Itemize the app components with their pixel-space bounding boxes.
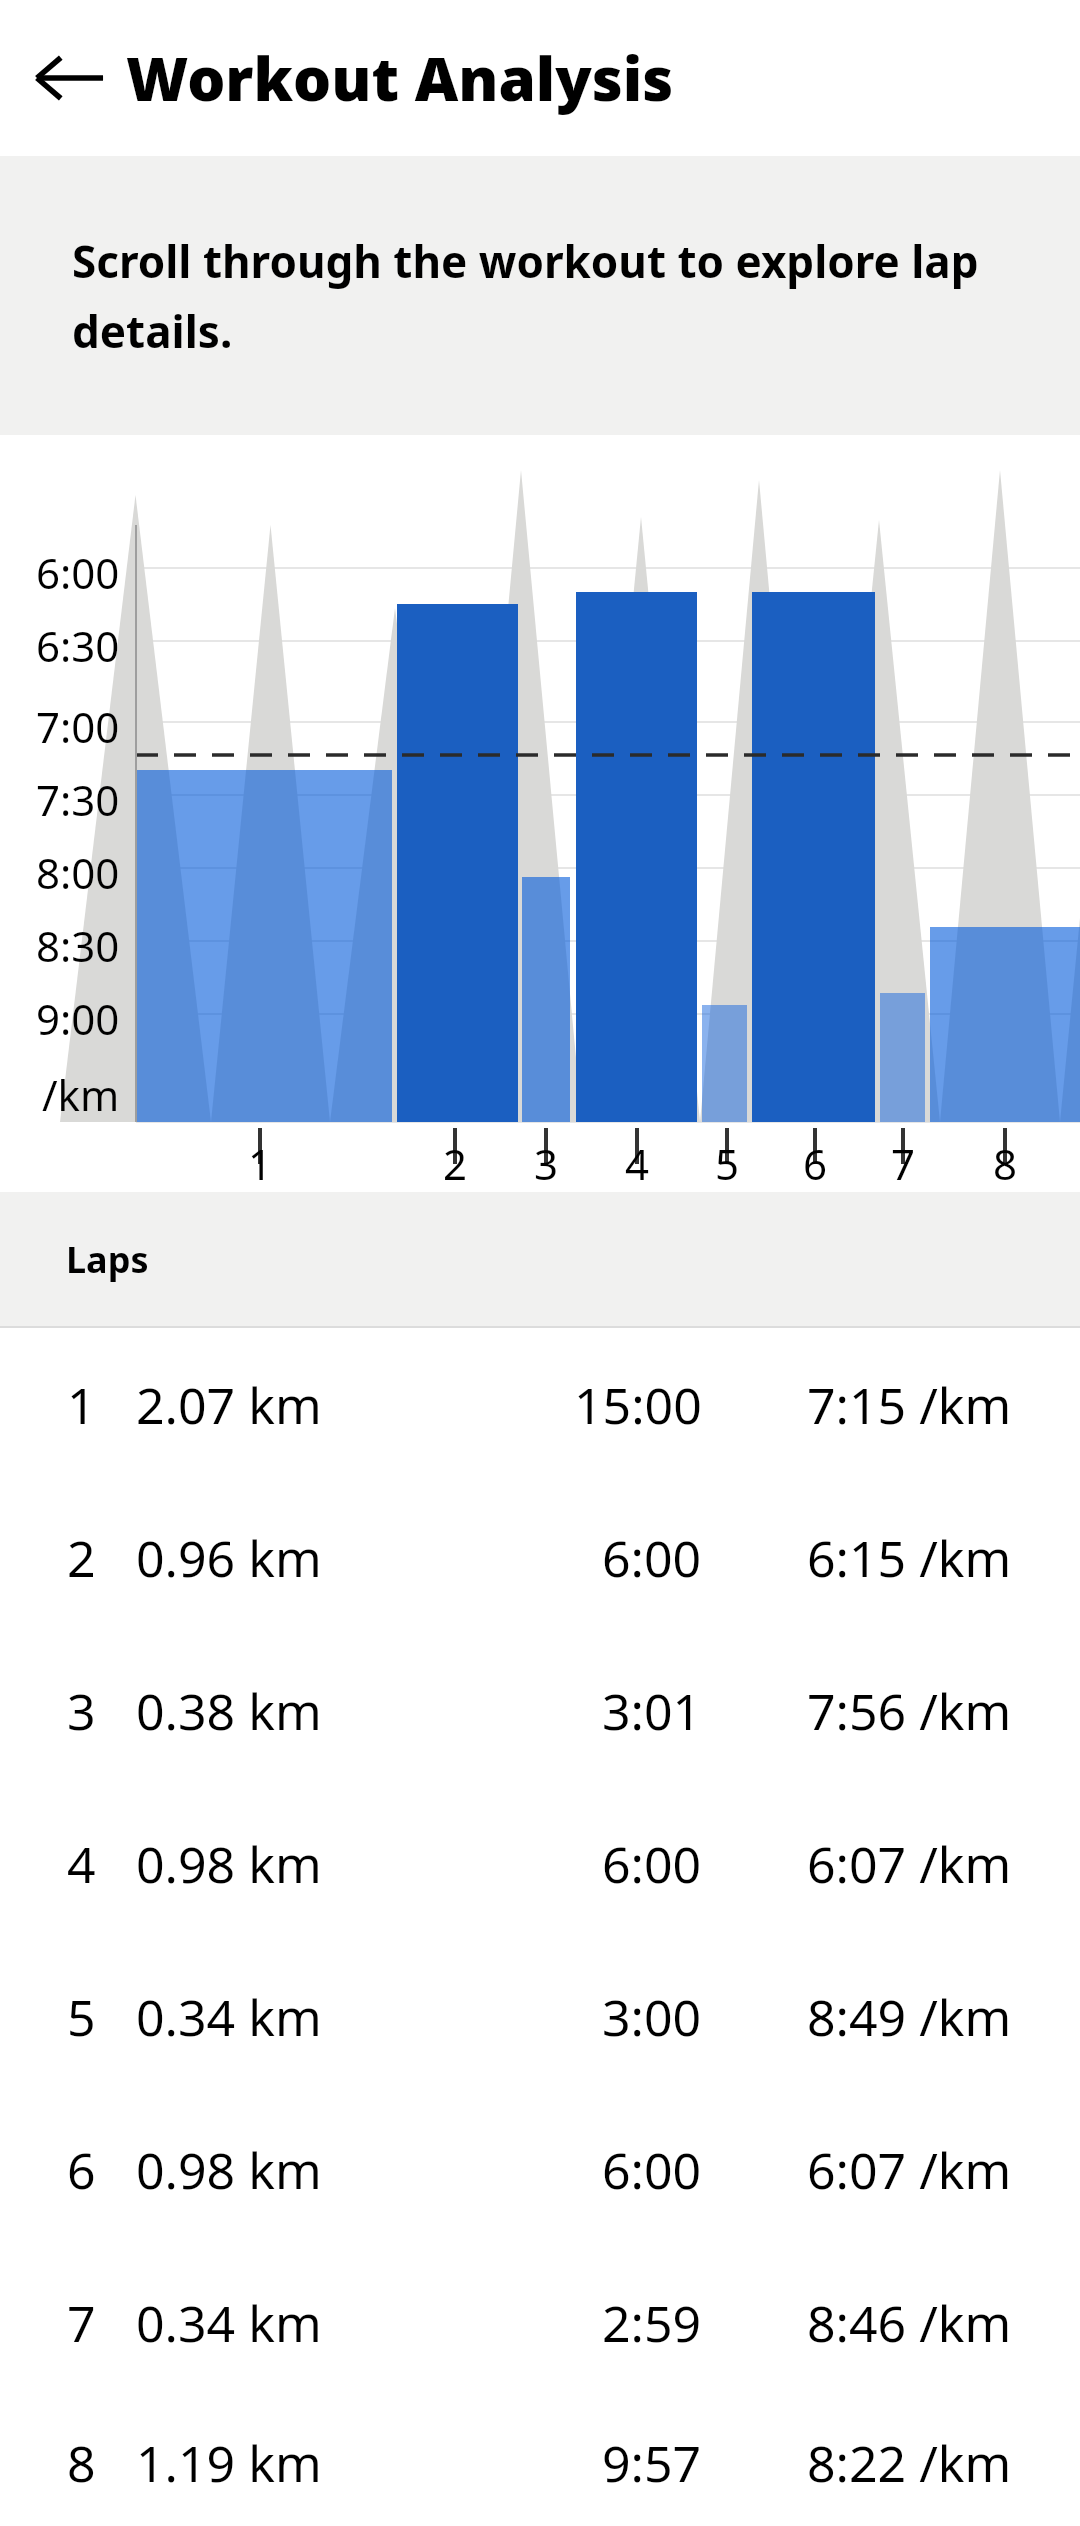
staticText: 6:00 (602, 2136, 702, 2204)
staticText: 0.34 km (136, 2289, 322, 2357)
staticText: 0.96 km (136, 1524, 322, 1592)
staticText: /km (42, 1066, 120, 1123)
button[interactable]: 7 (0, 2246, 1080, 2399)
button[interactable]: 2 (0, 1481, 1080, 1634)
staticText: 8:30 (36, 917, 120, 974)
staticText: 6 (67, 2136, 96, 2204)
staticText: 6:30 (36, 617, 120, 674)
staticText: 5 (715, 1135, 740, 1192)
staticText: Scroll through the workout to explore la… (72, 231, 992, 361)
staticText: 7 (67, 2289, 96, 2357)
staticText: 8:46 /km (807, 2289, 1012, 2357)
staticText: 6:00 (36, 544, 120, 601)
staticText: 1 (248, 1135, 273, 1192)
staticText: 3:01 (602, 1677, 702, 1745)
staticText: 8 (67, 2429, 96, 2497)
button[interactable]: 6 (0, 2093, 1080, 2246)
button[interactable]: 4 (0, 1787, 1080, 1940)
staticText: 0.38 km (136, 1677, 322, 1745)
staticText: 6:15 /km (807, 1524, 1012, 1592)
staticText: 4 (67, 1830, 96, 1898)
staticText: 6 (803, 1135, 828, 1192)
staticText: 7 (891, 1135, 916, 1192)
staticText: 6:00 (602, 1830, 702, 1898)
staticText: 8:22 /km (807, 2429, 1012, 2497)
button[interactable]: Back (14, 22, 126, 134)
staticText: Laps (66, 1235, 149, 1284)
staticText: 3 (67, 1677, 96, 1745)
staticText: 8:00 (36, 844, 120, 901)
staticText: 0.98 km (136, 2136, 322, 2204)
staticText: 2 (67, 1524, 96, 1592)
staticText: 8:49 /km (807, 1983, 1012, 2051)
staticText: 4 (625, 1135, 650, 1192)
staticText: 15:00 (574, 1371, 702, 1439)
staticText: 6:07 /km (807, 2136, 1012, 2204)
staticText: 1.19 km (136, 2429, 322, 2497)
staticText: 7:30 (36, 771, 120, 828)
button[interactable]: 3 (0, 1634, 1080, 1787)
staticText: 7:56 /km (807, 1677, 1012, 1745)
staticText: 7:15 /km (807, 1371, 1012, 1439)
staticText: 6:07 /km (807, 1830, 1012, 1898)
staticText: 2:59 (602, 2289, 702, 2357)
staticText: 7:00 (36, 698, 120, 755)
staticText: 2.07 km (136, 1371, 322, 1439)
staticText: 9:00 (36, 990, 120, 1047)
button[interactable]: 1 (0, 1328, 1080, 1481)
staticText: 6:00 (602, 1524, 702, 1592)
staticText: 5 (67, 1983, 96, 2051)
staticText: 3:00 (602, 1983, 702, 2051)
staticText: Workout Analysis (126, 37, 674, 119)
button[interactable]: 5 (0, 1940, 1080, 2093)
staticText: 0.34 km (136, 1983, 322, 2051)
staticText: 0.98 km (136, 1830, 322, 1898)
staticText: 1 (67, 1371, 96, 1439)
staticText: 9:57 (602, 2429, 702, 2497)
staticText: 2 (443, 1135, 468, 1192)
staticText: 8 (993, 1135, 1018, 1192)
staticText: 3 (534, 1135, 559, 1192)
button[interactable]: 8 (0, 2399, 1080, 2526)
